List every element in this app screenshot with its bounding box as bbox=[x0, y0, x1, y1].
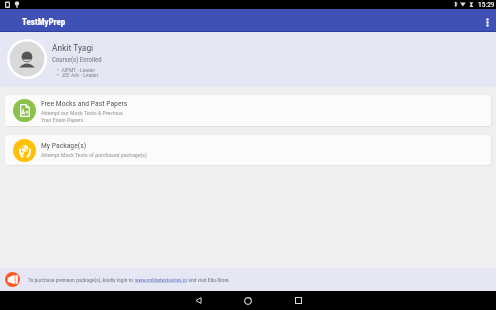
staticText: Ankit Tyagi bbox=[52, 42, 94, 53]
button[interactable]: Ankit Tyagi bbox=[0, 32, 496, 87]
staticText: 15:29 bbox=[478, 0, 495, 9]
staticText: Attempt Mock Tests of purchased package(… bbox=[41, 152, 147, 159]
button[interactable]: Home bbox=[230, 291, 266, 310]
button[interactable]: Free Mocks and Past Papers bbox=[5, 95, 491, 126]
staticText: To purchase premium package(s), kindly l… bbox=[28, 277, 135, 283]
staticText: Course(s) Enrolled bbox=[52, 56, 102, 64]
staticText: TestMyPrep bbox=[22, 17, 66, 28]
staticText: and visit Edu-Store. bbox=[187, 277, 231, 283]
staticText: Free Mocks and Past Papers bbox=[41, 99, 128, 108]
staticText: • AIPMT - Leader • JEE Adv - Leader bbox=[57, 67, 99, 78]
staticText: My Package(s) bbox=[41, 141, 87, 150]
staticText: www.onlinetestseries.in bbox=[135, 277, 187, 283]
button[interactable]: My Package(s) bbox=[5, 135, 491, 165]
button[interactable]: To purchase premium package(s), kindly l… bbox=[0, 268, 496, 291]
button[interactable]: Recent apps bbox=[280, 291, 316, 310]
button[interactable]: Back bbox=[180, 291, 216, 310]
button[interactable]: More options bbox=[478, 9, 496, 31]
staticText: Attempt our Mock Tests & Previous Your E… bbox=[41, 110, 123, 123]
